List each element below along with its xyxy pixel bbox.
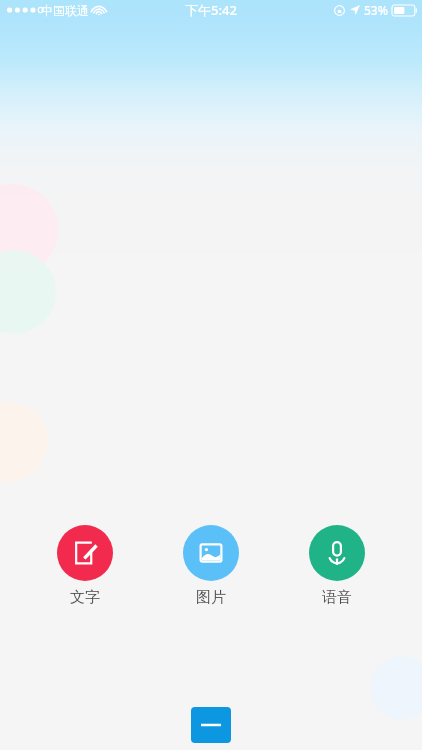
staticText: 中国联通 <box>41 3 89 18</box>
staticText: 图片 <box>196 588 226 607</box>
staticText: 下午5:42 <box>185 1 237 19</box>
button[interactable]: Collapse <box>191 707 231 743</box>
staticText: 语音 <box>322 588 352 607</box>
staticText: 53% <box>364 2 388 18</box>
button[interactable]: Text note <box>57 525 113 607</box>
staticText: 文字 <box>70 588 100 607</box>
button[interactable]: Photo <box>183 525 239 607</box>
button[interactable]: Voice <box>309 525 365 607</box>
